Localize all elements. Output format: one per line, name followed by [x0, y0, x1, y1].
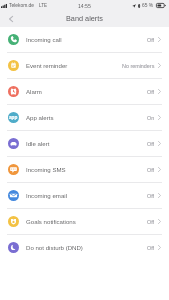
staticText: LTE: [39, 3, 48, 8]
staticText: Event reminder: [26, 62, 68, 69]
staticText: Goals notifications: [26, 218, 76, 225]
staticText: Incoming SMS: [26, 166, 66, 173]
button[interactable]: Incoming call: [0, 27, 169, 52]
staticText: Idle alert: [26, 140, 50, 147]
button[interactable]: Event reminder: [0, 53, 169, 78]
staticText: Off: [147, 219, 155, 225]
staticText: On: [147, 115, 155, 121]
staticText: Band alerts: [66, 14, 103, 22]
button[interactable]: Incoming SMS: [0, 157, 169, 182]
button[interactable]: Incoming email: [0, 183, 169, 208]
staticText: 65 %: [142, 3, 154, 8]
staticText: Off: [147, 193, 155, 199]
staticText: app: [9, 115, 18, 120]
button[interactable]: Goals notifications: [0, 209, 169, 234]
staticText: Incoming email: [26, 192, 67, 199]
staticText: Telekom.de: [9, 3, 35, 8]
staticText: App alerts: [26, 114, 54, 121]
staticText: 14:55: [78, 3, 91, 9]
staticText: Off: [147, 167, 155, 173]
staticText: Incoming call: [26, 36, 62, 43]
button[interactable]: app: [0, 105, 169, 130]
staticText: Off: [147, 141, 155, 147]
staticText: No reminders: [122, 63, 155, 69]
staticText: Off: [147, 245, 155, 251]
button[interactable]: Alarm: [0, 79, 169, 104]
button[interactable]: Idle alert: [0, 131, 169, 156]
button[interactable]: Back: [0, 11, 22, 27]
staticText: Off: [147, 89, 155, 95]
button[interactable]: Do not disturb (DND): [0, 235, 169, 260]
staticText: Do not disturb (DND): [26, 244, 83, 251]
staticText: Alarm: [26, 88, 42, 95]
staticText: Off: [147, 37, 155, 43]
